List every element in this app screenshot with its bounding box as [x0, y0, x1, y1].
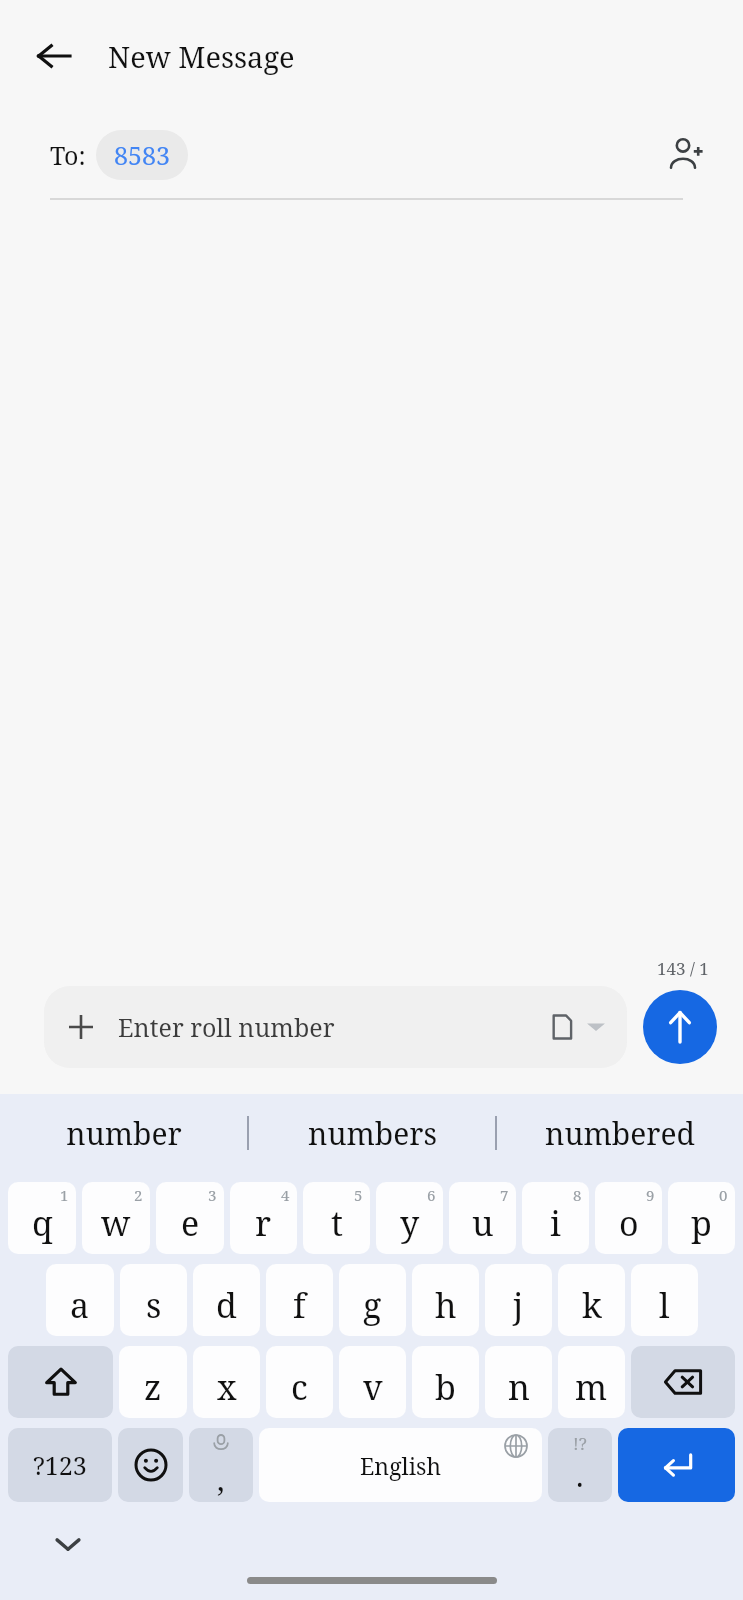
staticText: z	[144, 1364, 162, 1410]
staticText: l	[659, 1282, 670, 1328]
staticText: ?123	[33, 1448, 87, 1482]
staticText: ,	[217, 1459, 225, 1500]
staticText: To:	[50, 138, 86, 172]
staticText: numbered	[545, 1113, 695, 1154]
button[interactable]: 4	[230, 1182, 297, 1254]
staticText: p	[691, 1200, 712, 1246]
button[interactable]: numbers	[249, 1094, 495, 1172]
button[interactable]: 2	[82, 1182, 150, 1254]
button[interactable]: g	[339, 1264, 406, 1336]
button[interactable]: m	[558, 1346, 625, 1418]
staticText: 1	[60, 1185, 69, 1205]
button[interactable]: 5	[303, 1182, 370, 1254]
staticText: j	[513, 1282, 524, 1328]
button[interactable]: a	[46, 1264, 114, 1336]
staticText: a	[70, 1282, 90, 1328]
staticText: g	[363, 1282, 382, 1328]
staticText: o	[619, 1200, 639, 1246]
staticText: numbers	[308, 1113, 437, 1154]
button[interactable]: Send	[643, 990, 717, 1064]
button[interactable]: 7	[449, 1182, 516, 1254]
staticText: v	[363, 1364, 383, 1410]
staticText: w	[101, 1200, 131, 1246]
button[interactable]: Backspace	[631, 1346, 735, 1418]
button[interactable]: 6	[376, 1182, 443, 1254]
staticText: 9	[646, 1185, 655, 1205]
staticText: number	[66, 1113, 182, 1154]
button[interactable]: 8	[522, 1182, 589, 1254]
staticText: s	[146, 1282, 162, 1328]
button[interactable]: Hide keyboard	[44, 1520, 92, 1568]
staticText: h	[435, 1282, 457, 1328]
button[interactable]: v	[339, 1346, 406, 1418]
button[interactable]: 9	[595, 1182, 662, 1254]
staticText: f	[293, 1282, 306, 1328]
staticText: 3	[208, 1185, 217, 1205]
button[interactable]: c	[266, 1346, 333, 1418]
staticText: q	[32, 1200, 53, 1246]
staticText: 4	[281, 1185, 290, 1205]
button[interactable]: !?	[548, 1428, 612, 1502]
staticText: 7	[500, 1185, 509, 1205]
button[interactable]: s	[120, 1264, 187, 1336]
staticText: 8583	[114, 138, 170, 172]
staticText: u	[472, 1200, 494, 1246]
staticText: d	[216, 1282, 237, 1328]
button[interactable]: English	[259, 1428, 542, 1502]
staticText: 6	[427, 1185, 436, 1205]
button[interactable]: Emoji	[118, 1428, 183, 1502]
staticText: i	[550, 1200, 561, 1246]
button[interactable]: Shift	[8, 1346, 113, 1418]
button[interactable]: Enter	[618, 1428, 735, 1502]
button[interactable]: Add contact	[659, 127, 715, 183]
button[interactable]: d	[193, 1264, 260, 1336]
button[interactable]: 1	[8, 1182, 76, 1254]
button[interactable]: j	[485, 1264, 552, 1336]
button[interactable]: x	[193, 1346, 260, 1418]
staticText: 8	[573, 1185, 582, 1205]
button[interactable]: n	[485, 1346, 552, 1418]
staticText: 0	[719, 1185, 728, 1205]
button[interactable]: k	[558, 1264, 625, 1336]
staticText: !?	[573, 1432, 587, 1455]
staticText: m	[575, 1364, 608, 1410]
button[interactable]: numbered	[497, 1094, 743, 1172]
button[interactable]: 3	[156, 1182, 224, 1254]
staticText: .	[576, 1455, 584, 1496]
button[interactable]: Enter roll number	[44, 986, 627, 1068]
staticText: b	[435, 1364, 456, 1410]
button[interactable]: l	[631, 1264, 698, 1336]
staticText: 2	[134, 1185, 143, 1205]
staticText: New Message	[108, 37, 295, 76]
button[interactable]: ,	[189, 1428, 253, 1502]
button[interactable]: 0	[668, 1182, 735, 1254]
staticText: n	[508, 1364, 530, 1410]
staticText: 5	[354, 1185, 363, 1205]
staticText: e	[181, 1200, 200, 1246]
staticText: English	[360, 1450, 442, 1481]
staticText: r	[255, 1200, 272, 1246]
button[interactable]: z	[119, 1346, 187, 1418]
staticText: 143 / 1	[657, 957, 709, 980]
staticText: x	[217, 1364, 237, 1410]
staticText: Enter roll number	[118, 1010, 335, 1044]
button[interactable]: Back	[22, 24, 86, 88]
button[interactable]: f	[266, 1264, 333, 1336]
button[interactable]: h	[412, 1264, 479, 1336]
button[interactable]: ?123	[8, 1428, 112, 1502]
staticText: t	[331, 1200, 343, 1246]
staticText: y	[400, 1200, 420, 1246]
staticText: k	[582, 1282, 602, 1328]
staticText: c	[291, 1364, 308, 1410]
button[interactable]: number	[0, 1094, 247, 1172]
button[interactable]: b	[412, 1346, 479, 1418]
button[interactable]: 8583	[96, 130, 188, 180]
